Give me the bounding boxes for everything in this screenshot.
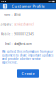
staticText: Mobile : xyxy=(1,32,13,36)
staticText: Company : xyxy=(0,23,13,26)
staticText: Alice xyxy=(14,13,21,16)
staticText: Email : xyxy=(5,42,13,46)
staticText: Create xyxy=(21,71,34,76)
staticText: alex@test.com xyxy=(14,42,31,46)
staticText: Customer Profile xyxy=(11,4,44,9)
staticText: T xyxy=(4,4,6,9)
staticText: We collect this information from your cu… xyxy=(2,50,53,64)
button[interactable]: App icon xyxy=(0,3,10,9)
staticText: Name : xyxy=(4,13,13,16)
staticText: 9000012345 xyxy=(14,32,34,36)
staticText: servicechannel xyxy=(14,23,34,26)
button[interactable]: Create xyxy=(17,69,39,78)
